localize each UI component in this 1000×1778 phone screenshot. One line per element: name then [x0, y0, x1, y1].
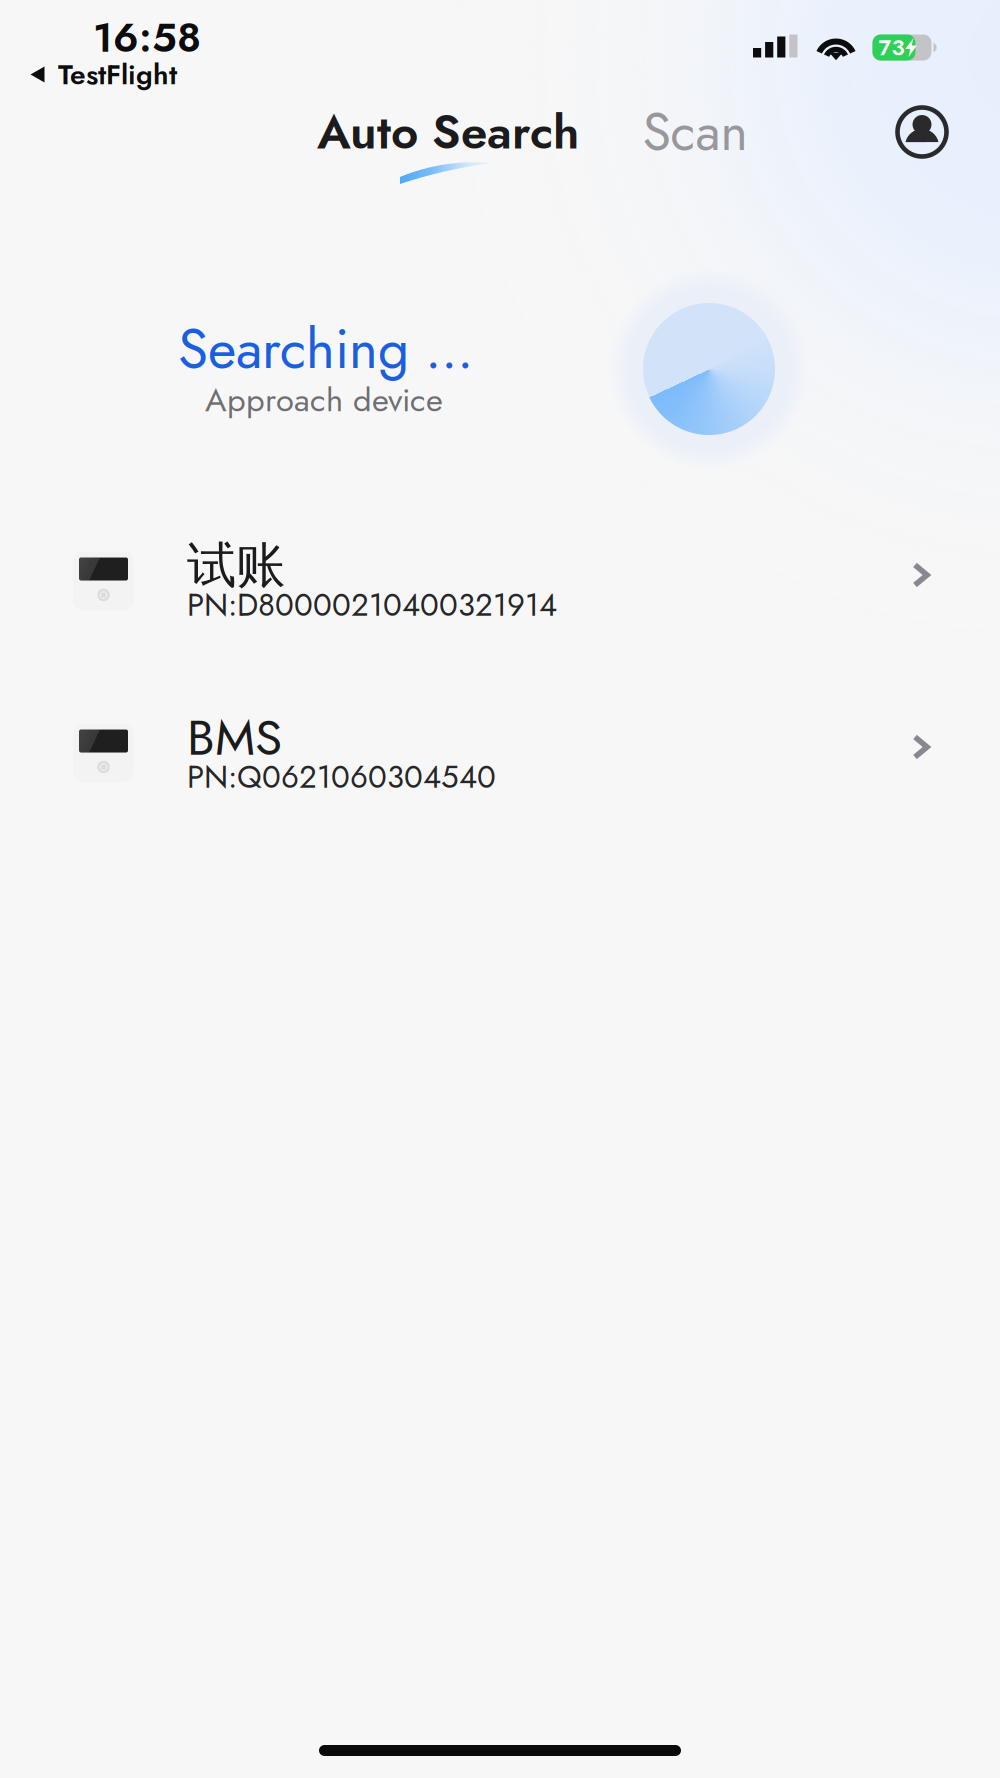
staticText: Auto Search	[317, 98, 579, 166]
staticText: TestFlight	[58, 54, 177, 95]
staticText: 73	[878, 32, 904, 63]
staticText: BMS	[187, 702, 282, 773]
button[interactable]: Auto Search	[306, 92, 590, 192]
staticText: Scan	[642, 94, 747, 169]
button[interactable]: Scan	[629, 92, 761, 192]
staticText: 试账	[187, 534, 285, 596]
staticText: Searching ...	[178, 309, 473, 389]
button[interactable]: Account	[891, 92, 953, 192]
button[interactable]: BMS	[0, 694, 1000, 812]
staticText: PN:Q0621060304540	[187, 754, 496, 800]
staticText: 16:58	[93, 9, 201, 67]
staticText: Approach device	[205, 376, 443, 424]
button[interactable]: 试账	[0, 522, 1000, 640]
staticText: PN:D80000210400321914	[187, 582, 557, 628]
